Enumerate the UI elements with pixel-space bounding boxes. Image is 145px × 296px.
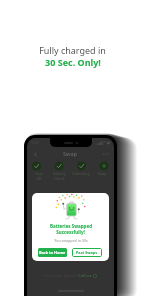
staticText: Swap: [97, 171, 107, 176]
button[interactable]: Back to Home: [38, 248, 67, 257]
staticText: 30 Sec. Only!: [45, 56, 101, 68]
staticText: Swap: [63, 150, 78, 157]
staticText: Call us: [78, 273, 92, 279]
button[interactable]: More options: [102, 150, 110, 158]
staticText: Past Swaps: [76, 250, 98, 255]
button[interactable]: Facing an Issue?: [27, 273, 114, 279]
staticText: You swapped in 30s: [54, 238, 88, 243]
button[interactable]: Back: [31, 150, 39, 158]
button[interactable]: Past Swaps: [72, 248, 102, 257]
staticText: Batteries Swapped: [50, 223, 92, 229]
staticText: Scan: [35, 171, 44, 176]
staticText: Fully charged in: [39, 44, 106, 56]
staticText: 9:41: [31, 140, 40, 146]
staticText: QR: [36, 176, 42, 180]
staticText: Successfully!: [56, 229, 85, 235]
staticText: Unlocking: [72, 171, 90, 176]
staticText: Back to Home: [39, 250, 66, 255]
staticText: Battery: [53, 171, 66, 176]
staticText: Check: [54, 176, 65, 180]
